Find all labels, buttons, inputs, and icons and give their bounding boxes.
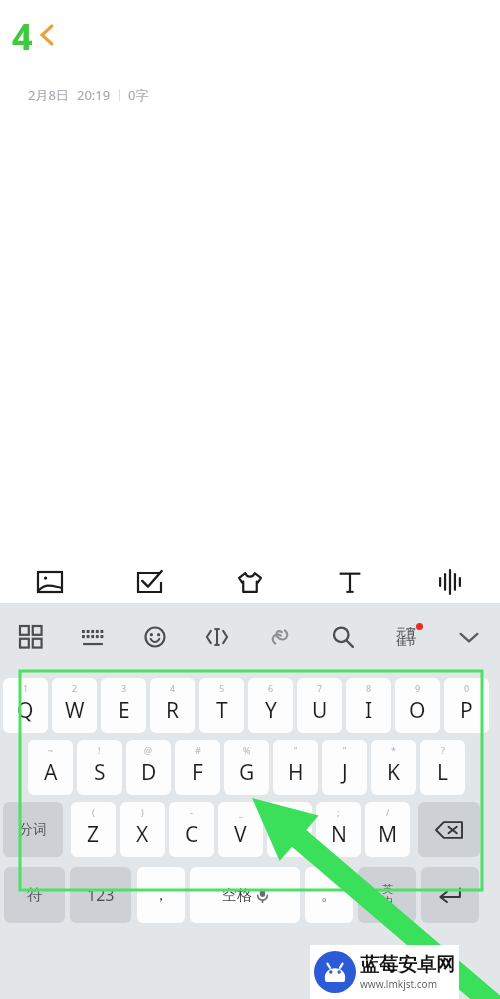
staticText: 4 — [12, 12, 33, 56]
button[interactable]: % — [224, 740, 269, 795]
button[interactable]: 2 — [52, 678, 97, 733]
button[interactable]: ( — [71, 802, 116, 857]
button[interactable]: ; — [316, 802, 361, 857]
staticText: 2 — [72, 682, 78, 694]
button[interactable]: Cursor control — [186, 603, 248, 671]
staticText: J — [342, 758, 348, 787]
button[interactable]: ' — [267, 802, 312, 857]
staticText: Q — [17, 696, 34, 725]
staticText: N — [331, 820, 347, 849]
button[interactable]: # — [175, 740, 220, 795]
staticText: * — [391, 744, 396, 756]
button[interactable]: 123 — [70, 867, 131, 923]
staticText: V — [234, 820, 247, 849]
button[interactable]: 分词 — [3, 802, 63, 857]
button[interactable]: - — [169, 802, 214, 857]
staticText: G — [239, 758, 255, 787]
staticText: / — [386, 806, 390, 818]
button[interactable]: 空格 — [190, 867, 300, 923]
button[interactable]: @ — [126, 740, 171, 795]
button[interactable]: ， — [137, 867, 185, 923]
staticText: ) — [141, 806, 144, 818]
staticText: ! — [98, 744, 101, 756]
staticText: R — [166, 696, 180, 725]
button[interactable]: 9 — [395, 678, 440, 733]
button[interactable]: 6 — [248, 678, 293, 733]
staticText: “ — [294, 744, 298, 756]
staticText: K — [387, 758, 400, 787]
button[interactable]: ) — [120, 802, 165, 857]
staticText: M — [378, 820, 398, 849]
button[interactable]: Clipboard — [248, 603, 311, 671]
button[interactable]: Backspace — [418, 802, 480, 857]
button[interactable]: / — [365, 802, 410, 857]
staticText: ~ — [48, 744, 54, 756]
button[interactable]: 英 中 — [358, 867, 416, 923]
button[interactable]: 3 — [101, 678, 146, 733]
staticText: W — [65, 696, 85, 725]
staticText: A — [44, 758, 58, 787]
staticText: P — [460, 696, 473, 725]
staticText: 分词 — [19, 821, 47, 839]
button[interactable]: ” — [322, 740, 367, 795]
staticText: L — [437, 758, 449, 787]
button[interactable]: 0 — [444, 678, 489, 733]
staticText: 3 — [121, 682, 127, 694]
staticText: - — [190, 806, 193, 818]
button[interactable]: 4 — [150, 678, 195, 733]
staticText: ' — [288, 806, 291, 818]
button[interactable]: Numeric keypad — [62, 603, 124, 671]
staticText: T — [216, 696, 228, 725]
staticText: F — [192, 758, 203, 787]
staticText: O — [409, 696, 426, 725]
button[interactable]: _ — [218, 802, 263, 857]
staticText: 蓝莓安卓网 — [360, 953, 455, 977]
staticText: B — [283, 820, 297, 849]
button[interactable]: Checklist — [100, 560, 200, 603]
staticText: _ — [239, 806, 243, 818]
staticText: ， — [153, 885, 169, 905]
button[interactable]: 。 — [305, 867, 353, 923]
staticText: 6 — [268, 682, 274, 694]
button[interactable]: 1 — [3, 678, 48, 733]
staticText: 7 — [317, 682, 323, 694]
staticText: 。 — [321, 885, 337, 905]
staticText: 4 — [170, 682, 176, 694]
staticText: H — [288, 758, 304, 787]
staticText: ” — [343, 744, 347, 756]
button[interactable]: Search — [311, 603, 374, 671]
button[interactable]: ~ — [28, 740, 73, 795]
button[interactable]: 8 — [346, 678, 391, 733]
button[interactable]: Voice input — [400, 560, 500, 603]
button[interactable]: 7 — [297, 678, 342, 733]
button[interactable]: Keyboard layouts — [0, 603, 62, 671]
staticText: I — [365, 696, 373, 725]
button[interactable]: Enter — [421, 867, 479, 923]
button[interactable]: 5 — [199, 678, 244, 733]
staticText: ? — [441, 744, 445, 756]
staticText: ; — [337, 806, 340, 818]
staticText: D — [141, 758, 157, 787]
staticText: X — [136, 820, 149, 849]
staticText: ( — [92, 806, 95, 818]
button[interactable]: Text format — [300, 560, 400, 603]
staticText: 符 — [27, 885, 43, 905]
button[interactable]: ? — [420, 740, 465, 795]
staticText: Y — [265, 696, 277, 725]
button[interactable]: ! — [77, 740, 122, 795]
button[interactable]: Hide keyboard — [437, 603, 500, 671]
button[interactable]: Emoji — [124, 603, 186, 671]
staticText: C — [185, 820, 199, 849]
button[interactable]: * — [371, 740, 416, 795]
staticText: 9 — [415, 682, 421, 694]
staticText: 0字 — [128, 86, 149, 104]
button[interactable]: 符 — [4, 867, 65, 923]
button[interactable]: 元宵 佳节 — [374, 603, 437, 671]
staticText: 英 中 — [382, 882, 393, 908]
staticText: 元宵 佳节 — [396, 626, 416, 648]
button[interactable]: Insert image — [0, 560, 100, 603]
staticText: 空格 — [222, 886, 252, 905]
staticText: S — [94, 758, 106, 787]
button[interactable]: Sticker — [200, 560, 300, 603]
button[interactable]: “ — [273, 740, 318, 795]
